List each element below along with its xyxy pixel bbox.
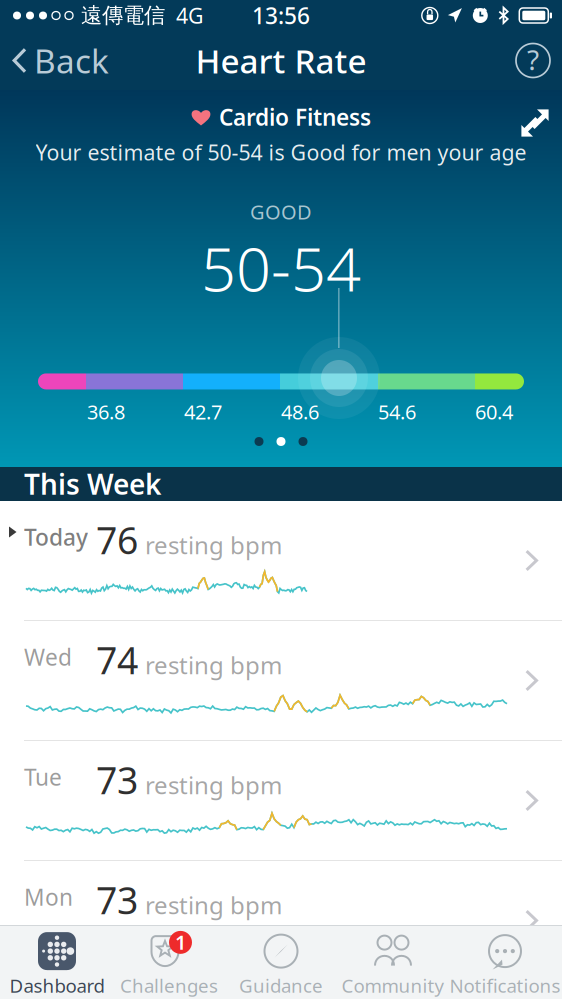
- staticText: Heart Rate: [195, 38, 366, 83]
- staticText: Guidance: [239, 973, 323, 998]
- staticText: 13:56: [252, 0, 310, 30]
- staticText: Dashboard: [9, 973, 104, 998]
- staticText: 36.8: [87, 398, 125, 425]
- button[interactable]: Dashboard: [1, 926, 113, 999]
- staticText: 60.4: [475, 398, 513, 425]
- button[interactable]: Back: [0, 31, 119, 90]
- staticText: 73: [96, 755, 138, 805]
- staticText: resting bpm: [145, 649, 282, 681]
- button[interactable]: Help: [504, 31, 562, 90]
- staticText: 遠傳電信: [81, 2, 165, 29]
- staticText: Community: [341, 973, 444, 998]
- staticText: 50-54: [201, 227, 361, 308]
- staticText: Back: [34, 38, 109, 83]
- staticText: Challenges: [120, 973, 218, 998]
- staticText: 74: [96, 635, 138, 685]
- button[interactable]: 1: [113, 926, 225, 999]
- button[interactable]: Expand chart: [508, 96, 562, 150]
- staticText: 76: [96, 515, 138, 565]
- staticText: resting bpm: [145, 529, 282, 561]
- staticText: Cardio Fitness: [219, 102, 371, 132]
- staticText: Wed: [24, 642, 72, 672]
- staticText: 4G: [176, 1, 204, 30]
- staticText: Notifications: [449, 973, 560, 998]
- staticText: Mon: [24, 882, 73, 912]
- staticText: GOOD: [250, 198, 312, 225]
- button[interactable]: Community: [337, 926, 449, 999]
- staticText: 48.6: [281, 398, 319, 425]
- staticText: This Week: [24, 465, 161, 503]
- staticText: Your estimate of 50-54 is Good for men y…: [35, 138, 526, 166]
- button[interactable]: Notifications: [449, 926, 561, 999]
- button[interactable]: Tue: [0, 741, 562, 860]
- staticText: 1: [175, 929, 186, 955]
- staticText: ?: [527, 41, 539, 78]
- button[interactable]: Today: [0, 501, 562, 620]
- staticText: resting bpm: [145, 769, 282, 801]
- button[interactable]: Wed: [0, 621, 562, 740]
- staticText: Today: [24, 522, 88, 552]
- button[interactable]: Guidance: [225, 926, 337, 999]
- staticText: 54.6: [378, 398, 416, 425]
- staticText: Tue: [24, 762, 62, 792]
- staticText: resting bpm: [145, 889, 282, 921]
- staticText: 42.7: [184, 398, 222, 425]
- button[interactable]: Mon: [0, 861, 562, 980]
- staticText: 73: [96, 875, 138, 925]
